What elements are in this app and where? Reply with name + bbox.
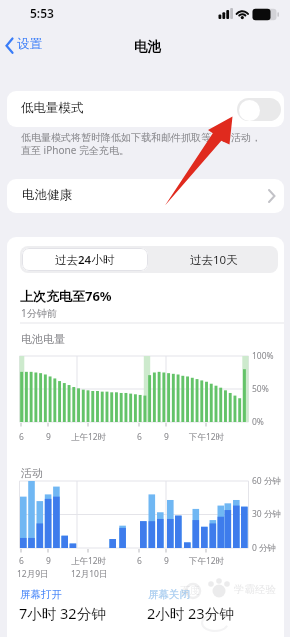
staticText: 50% — [252, 383, 269, 395]
staticText: 电池健康 — [22, 187, 72, 203]
button[interactable] — [22, 248, 148, 271]
staticText: 2小时 23分钟 — [147, 603, 234, 623]
staticText: 5:53 — [30, 5, 54, 21]
staticText: 低电量模式将暂时降低如下载和邮件抓取等后台活动， — [21, 131, 261, 144]
staticText: 百度 — [180, 584, 200, 597]
staticText: 下午12时 — [189, 431, 225, 443]
staticText: 60 分钟 — [252, 475, 281, 487]
staticText: 6 — [19, 555, 24, 567]
staticText: 30 分钟 — [252, 508, 281, 520]
staticText: 12月10日 — [71, 568, 108, 580]
staticText: 屏幕关闭 — [148, 588, 190, 601]
staticText: 活动 — [21, 466, 43, 480]
staticText: 电池电量 — [21, 332, 65, 346]
staticText: 屏幕打开 — [20, 588, 62, 601]
staticText: 过去10天 — [190, 252, 238, 268]
staticText: 低电量模式 — [21, 100, 84, 116]
staticText: 学霸经验 — [234, 583, 276, 596]
staticText: 设置 — [17, 36, 42, 52]
button[interactable] — [7, 179, 284, 213]
button[interactable] — [4, 34, 48, 58]
staticText: 9 — [164, 431, 169, 443]
staticText: 6 — [137, 431, 142, 443]
staticText: 12月9日 — [17, 568, 49, 580]
button[interactable] — [149, 248, 277, 271]
button[interactable] — [237, 98, 281, 121]
staticText: 上午12时 — [71, 555, 107, 567]
staticText: 上午12时 — [71, 431, 107, 443]
staticText: 1分钟前 — [21, 306, 57, 320]
staticText: 0% — [252, 416, 264, 428]
staticText: 电池 — [134, 38, 161, 55]
staticText: 下午12时 — [189, 555, 225, 567]
staticText: 9 — [46, 431, 51, 443]
staticText: 直至 iPhone 完全充电。 — [21, 143, 129, 157]
staticText: 9 — [46, 555, 51, 567]
staticText: 7小时 32分钟 — [19, 603, 106, 623]
staticText: 6 — [137, 555, 142, 567]
staticText: 过去24小时 — [55, 252, 115, 268]
staticText: 9 — [164, 555, 169, 567]
staticText: 6 — [19, 431, 24, 443]
staticText: 100% — [252, 350, 274, 362]
staticText: 0 分钟 — [252, 542, 277, 554]
staticText: 上次充电至76% — [20, 287, 112, 305]
